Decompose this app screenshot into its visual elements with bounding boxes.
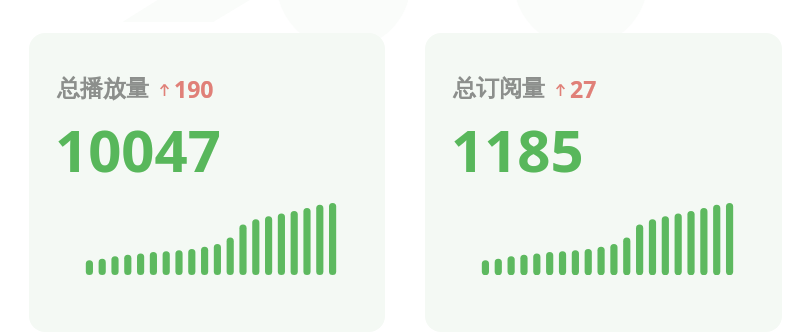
button[interactable]: 总订阅量 (425, 33, 782, 332)
staticText: 总播放量 (57, 74, 149, 103)
button[interactable]: 总播放量 (29, 33, 385, 332)
staticText: 10047 (55, 110, 221, 189)
staticText: 总订阅量 (453, 74, 545, 103)
staticText: 190 (174, 73, 214, 104)
staticText: 1185 (451, 110, 584, 189)
staticText: 27 (570, 73, 597, 104)
